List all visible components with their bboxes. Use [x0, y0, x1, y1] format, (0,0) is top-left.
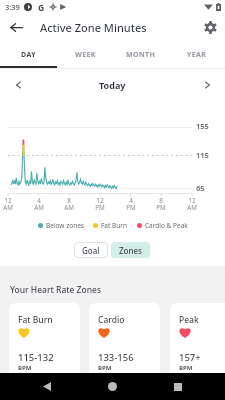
staticText: YEAR — [187, 50, 207, 60]
staticText: Fat Burn — [101, 221, 128, 230]
staticText: BPM — [18, 364, 32, 372]
staticText: Zones — [119, 245, 142, 256]
staticText: 115-132 — [18, 351, 54, 364]
button[interactable]: WEEK — [57, 42, 113, 68]
staticText: MONTH — [126, 50, 156, 60]
button[interactable]: Goal — [74, 242, 108, 258]
button[interactable]: Cardio — [89, 303, 160, 381]
button[interactable]: DAY — [0, 42, 57, 68]
staticText: 157+ — [179, 351, 201, 364]
staticText: 12 AM — [0, 196, 17, 211]
button[interactable]: Home — [94, 373, 131, 400]
staticText: Today — [99, 79, 126, 91]
staticText: Goal — [82, 245, 100, 256]
staticText: Active Zone Minutes — [40, 20, 147, 35]
staticText: WEEK — [75, 50, 96, 60]
staticText: Below zones — [46, 221, 84, 230]
staticText: G — [38, 2, 45, 14]
button[interactable]: Recents — [159, 373, 196, 400]
staticText: 8 AM — [60, 196, 78, 211]
staticText: 8 PM — [152, 196, 170, 211]
staticText: 4 AM — [30, 196, 48, 211]
staticText: DAY — [21, 50, 36, 60]
staticText: 12 AM — [183, 196, 201, 211]
button[interactable]: Previous day — [8, 75, 28, 95]
staticText: BPM — [98, 364, 112, 372]
staticText: 4 PM — [122, 196, 140, 211]
button[interactable]: Settings — [196, 13, 224, 41]
button[interactable]: YEAR — [169, 42, 225, 68]
button[interactable]: Next day — [197, 75, 217, 95]
staticText: Your Heart Rate Zones — [10, 284, 102, 296]
staticText: 155 — [196, 121, 209, 131]
staticText: Peak — [179, 314, 199, 326]
staticText: Cardio & Peak — [145, 221, 188, 230]
button[interactable]: Zones — [111, 242, 150, 258]
staticText: BPM — [179, 364, 193, 372]
staticText: 65 — [196, 183, 205, 193]
button[interactable]: MONTH — [113, 42, 169, 68]
button[interactable]: Back — [28, 373, 65, 400]
staticText: Fat Burn — [18, 314, 53, 326]
button[interactable]: Peak — [170, 303, 225, 381]
staticText: 3:39 — [5, 2, 20, 12]
staticText: 12 PM — [91, 196, 109, 211]
staticText: 115 — [196, 150, 209, 160]
button[interactable]: Back — [2, 13, 30, 41]
staticText: Cardio — [98, 314, 125, 326]
button[interactable]: Fat Burn — [9, 303, 80, 381]
staticText: 133-156 — [98, 351, 134, 364]
